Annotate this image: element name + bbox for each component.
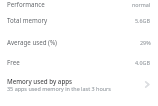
staticText: Total memory xyxy=(7,16,48,24)
button[interactable]: Average used (%) xyxy=(0,32,158,52)
button[interactable]: Free xyxy=(0,52,158,72)
button[interactable]: Memory used by apps xyxy=(0,73,158,95)
staticText: Performance xyxy=(7,0,45,8)
staticText: 35 apps used memory in the last 3 hours xyxy=(7,85,111,92)
staticText: 4.0GB xyxy=(135,59,151,66)
button[interactable]: Open memory used by apps xyxy=(140,78,152,90)
button[interactable]: Performance xyxy=(0,0,158,8)
button[interactable]: Total memory xyxy=(0,8,158,32)
staticText: 29% xyxy=(140,39,151,46)
staticText: normal xyxy=(132,1,151,8)
staticText: Average used (%) xyxy=(7,38,57,46)
staticText: 5.6GB xyxy=(135,17,151,24)
staticText: Free xyxy=(7,58,20,66)
staticText: Memory used by apps xyxy=(7,77,73,85)
